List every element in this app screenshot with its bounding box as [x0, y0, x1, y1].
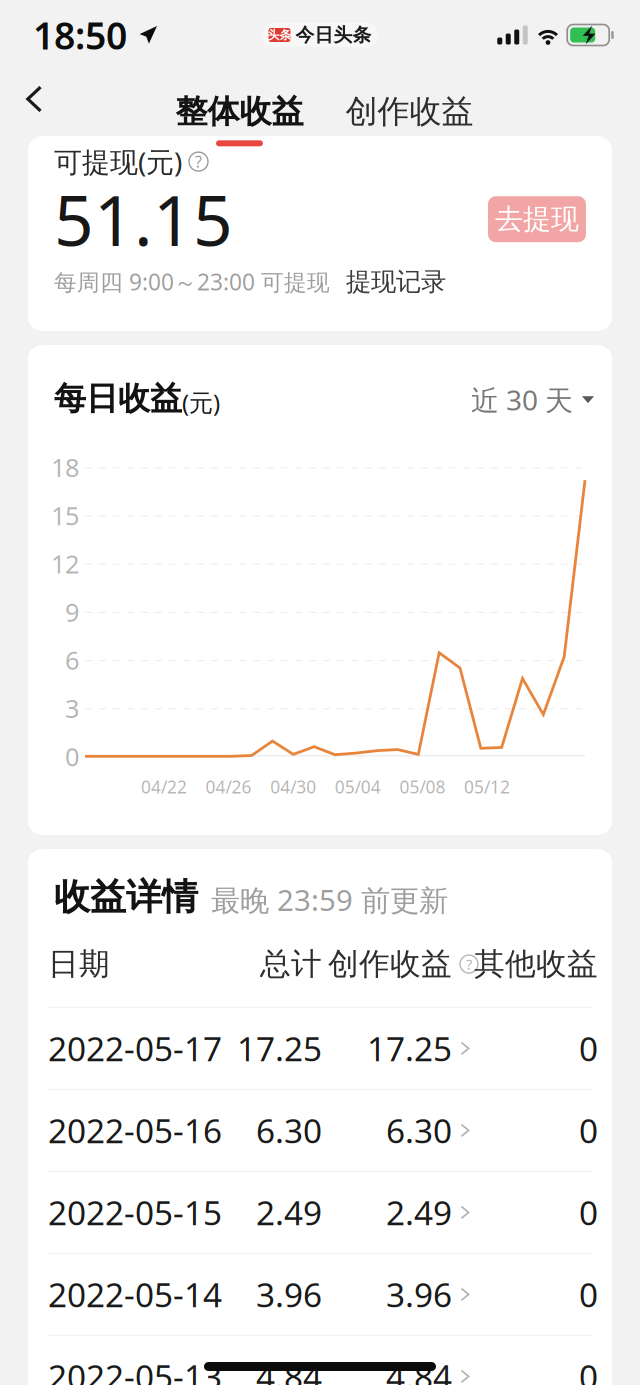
staticText: 0: [579, 1190, 598, 1235]
staticText: 12: [51, 547, 79, 580]
staticText: 17.25: [237, 1026, 322, 1071]
button[interactable]: 2022-05-15: [28, 1172, 612, 1253]
staticText: 0: [579, 1108, 598, 1153]
staticText: 创作收益: [345, 92, 473, 131]
staticText: 0: [579, 1354, 598, 1385]
staticText: 6: [65, 643, 79, 677]
button[interactable]: 去提现: [488, 196, 586, 242]
staticText: 04/22: [141, 775, 187, 798]
staticText: 6.30: [386, 1108, 452, 1153]
staticText: 17.25: [367, 1026, 452, 1071]
staticText: 2.49: [256, 1190, 322, 1235]
staticText: 2022-05-14: [48, 1272, 222, 1317]
staticText: 每日收益: [54, 379, 182, 418]
staticText: 04/30: [270, 775, 316, 798]
button[interactable]: 近 30 天: [471, 381, 594, 418]
staticText: 2.49: [386, 1190, 452, 1235]
staticText: 15: [51, 499, 79, 532]
staticText: 0: [65, 740, 79, 773]
staticText: 18:50: [33, 10, 127, 60]
staticText: ?: [466, 954, 472, 974]
staticText: 去提现: [495, 202, 579, 236]
staticText: 2022-05-16: [48, 1108, 222, 1153]
staticText: 今日头条: [295, 23, 371, 46]
staticText: 9: [65, 595, 79, 629]
button[interactable]: 提现记录: [346, 266, 446, 297]
staticText: 0: [579, 1272, 598, 1317]
staticText: (元): [182, 386, 220, 418]
staticText: 其他收益: [474, 945, 598, 983]
staticText: 2022-05-17: [48, 1026, 222, 1071]
staticText: 18: [51, 450, 79, 484]
button[interactable]: 创作收益: [350, 70, 469, 134]
button[interactable]: 2022-05-13: [28, 1336, 612, 1385]
staticText: 6.30: [256, 1108, 322, 1153]
staticText: 创作收益: [328, 945, 452, 983]
staticText: 4.84: [256, 1354, 322, 1385]
staticText: 51.15: [54, 173, 233, 265]
staticText: ?: [195, 151, 202, 172]
staticText: 2022-05-13: [48, 1354, 222, 1385]
staticText: 日期: [48, 945, 110, 983]
button[interactable]: 2022-05-17: [28, 1008, 612, 1089]
staticText: 最晚 23:59 前更新: [211, 880, 448, 919]
staticText: 3.96: [256, 1272, 322, 1317]
staticText: 近 30 天: [471, 381, 573, 418]
staticText: 3: [65, 691, 79, 725]
staticText: 4.84: [386, 1354, 452, 1385]
staticText: 整体收益: [175, 92, 303, 131]
staticText: 收益详情: [54, 875, 198, 919]
staticText: 每周四 9:00～23:00 可提现: [54, 267, 330, 297]
staticText: 提现记录: [346, 266, 446, 297]
staticText: 05/08: [399, 775, 445, 798]
staticText: 可提现(元): [54, 143, 182, 180]
staticText: 05/04: [335, 775, 381, 798]
button[interactable]: 整体收益: [180, 70, 299, 134]
staticText: 0: [579, 1026, 598, 1071]
staticText: 04/26: [206, 775, 252, 798]
staticText: 2022-05-15: [48, 1190, 222, 1235]
button[interactable]: Back: [5, 70, 63, 128]
staticText: 总计: [260, 945, 322, 983]
staticText: 05/12: [464, 775, 510, 798]
staticText: 3.96: [386, 1272, 452, 1317]
button[interactable]: 2022-05-16: [28, 1090, 612, 1171]
staticText: 头条: [267, 28, 291, 42]
button[interactable]: 2022-05-14: [28, 1254, 612, 1335]
